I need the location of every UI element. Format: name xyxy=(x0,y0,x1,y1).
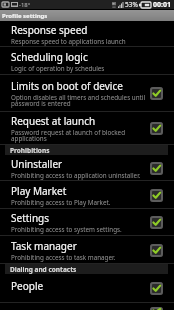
button[interactable]: Toggle xyxy=(150,122,163,135)
staticText: Request at launch xyxy=(11,114,96,128)
button[interactable]: Scheduling logic xyxy=(0,47,174,75)
staticText: Password request at launch of blocked ap… xyxy=(11,128,150,143)
button[interactable]: Settings xyxy=(0,209,174,236)
button[interactable]: Toggle xyxy=(0,303,174,310)
button[interactable]: Limits on boot of device xyxy=(0,75,174,112)
staticText: Scheduling logic xyxy=(11,50,88,64)
staticText: 00:01 xyxy=(153,0,171,9)
staticText: Settings xyxy=(11,211,50,225)
staticText: Response speed xyxy=(11,23,88,37)
staticText: Prohibiting access to application uninst… xyxy=(11,171,141,180)
staticText: -18° xyxy=(19,1,31,9)
button[interactable]: Task manager xyxy=(0,236,174,264)
button[interactable]: Toggle xyxy=(150,162,163,175)
staticText: Play Market xyxy=(11,184,67,198)
staticText: Uninstaller xyxy=(11,157,63,171)
button[interactable]: Play Market xyxy=(0,181,174,209)
staticText: Prohibiting access to Play Market. xyxy=(11,198,111,207)
staticText: Dialing and contacts xyxy=(10,265,77,274)
button[interactable]: Request at launch xyxy=(0,112,174,145)
staticText: Prohibiting access to system settings. xyxy=(11,225,122,234)
button[interactable]: Toggle xyxy=(150,216,163,229)
staticText: Profile settings xyxy=(2,12,48,20)
staticText: Task manager xyxy=(11,239,77,253)
staticText: Response speed to applications launch xyxy=(11,37,126,46)
staticText: 53% xyxy=(125,0,138,9)
staticText: Logic of operation by schedules xyxy=(11,64,105,73)
button[interactable]: Toggle xyxy=(150,189,163,202)
staticText: Prohibiting access to task manager. xyxy=(11,253,116,262)
staticText: Limits on boot of device xyxy=(11,79,123,93)
staticText: People xyxy=(11,279,44,293)
button[interactable]: Toggle xyxy=(150,307,163,310)
staticText: Prohibitions xyxy=(10,146,50,155)
button[interactable]: Toggle xyxy=(150,282,163,295)
button[interactable]: Toggle xyxy=(150,87,163,100)
button[interactable]: Response speed xyxy=(0,21,174,47)
button[interactable]: Toggle xyxy=(150,244,163,257)
button[interactable]: Uninstaller xyxy=(0,155,174,181)
staticText: Option disables all timers and schedules… xyxy=(11,93,150,108)
button[interactable]: People xyxy=(0,274,174,303)
